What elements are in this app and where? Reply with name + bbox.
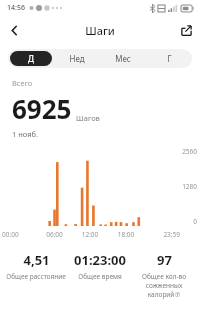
staticText: Шагов [76,113,100,123]
button[interactable]: Share [172,16,200,44]
staticText: 97 [157,251,172,269]
button[interactable]: Д [10,51,52,66]
button[interactable]: Г [148,51,190,66]
button[interactable]: Мес [102,51,144,66]
staticText: 0 [174,217,197,226]
button[interactable]: 4,51 [4,251,68,281]
staticText: 06:00 [37,230,72,239]
staticText: 1280 [174,182,197,191]
staticText: 2560 [174,147,197,156]
staticText: 18:00 [108,230,144,239]
staticText: 01:23:00 [74,251,126,269]
staticText: 12:00 [72,230,108,239]
staticText: Мес [115,53,131,64]
button[interactable]: Back [0,16,28,44]
staticText: Общее расстояние [6,272,66,281]
staticText: 1 нояб. [12,129,39,139]
staticText: 23:59 [144,230,180,239]
button[interactable]: 01:23:00 [68,251,132,281]
staticText: 14:56 [7,3,25,13]
staticText: 6925 [12,91,72,126]
button[interactable]: 97 [132,251,196,299]
staticText: Д [28,53,34,64]
staticText: Всего [12,78,33,88]
staticText: Общее время [70,272,130,281]
staticText: 4,51 [23,251,50,269]
staticText: 00:00 [2,230,37,239]
staticText: Шаги [85,23,115,38]
staticText: Общее кол-во сожженных калорий⑦ [134,272,194,299]
button[interactable]: Нед [56,51,98,66]
staticText: Г [167,53,172,64]
staticText: Нед [69,53,85,64]
